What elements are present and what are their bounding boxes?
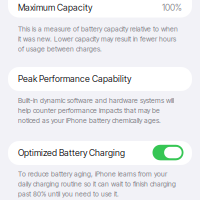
staticText: Peak Performance Capability <box>18 74 131 84</box>
staticText: help counter performance impacts that ma… <box>18 106 160 115</box>
staticText: it was new. Lower capacity may result in… <box>18 35 176 43</box>
staticText: of usage between charges. <box>18 45 102 53</box>
staticText: Maximum Capacity <box>18 2 92 13</box>
staticText: Optimized Battery Charging <box>18 148 125 158</box>
staticText: 100% <box>162 2 182 13</box>
staticText: noticed as your iPhone battery chemicall… <box>18 116 161 125</box>
staticText: past 80% until you need to use it. <box>18 190 119 198</box>
staticText: This is a measure of battery capacity re… <box>18 25 178 33</box>
staticText: daily charging routine so it can wait to… <box>18 180 176 188</box>
staticText: Built-in dynamic software and hardware s… <box>18 96 174 105</box>
staticText: To reduce battery aging, iPhone learns f… <box>18 170 167 178</box>
button[interactable]: Optimized Battery Charging, on <box>152 145 183 160</box>
button[interactable]: Peak Performance Capability <box>8 67 192 91</box>
button[interactable]: Maximum Capacity <box>8 0 192 17</box>
